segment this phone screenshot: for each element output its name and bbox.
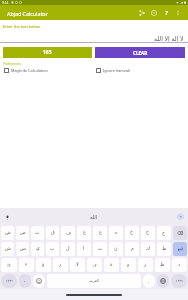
- button[interactable]: لا: [70, 258, 85, 272]
- button[interactable]: م: [125, 242, 139, 256]
- staticText: الله: [90, 214, 98, 220]
- button[interactable]: Share: [136, 7, 148, 19]
- staticText: لا: [76, 262, 79, 268]
- button[interactable]: ؟١٢٣: [1, 274, 17, 288]
- button[interactable]: Info: [148, 7, 160, 19]
- button[interactable]: ء: [19, 258, 34, 272]
- staticText: ح: [146, 230, 150, 236]
- button[interactable]: ل: [61, 242, 75, 256]
- staticText: .: [148, 278, 150, 285]
- button[interactable]: العربية: [47, 274, 141, 288]
- staticText: ؤ: [42, 262, 45, 268]
- button[interactable]: ش: [1, 242, 14, 256]
- button[interactable]: ه: [109, 226, 123, 240]
- button[interactable]: Voice input: [3, 213, 11, 221]
- staticText: ض: [5, 230, 11, 236]
- button[interactable]: خ: [125, 226, 139, 240]
- button[interactable]: Enter: [173, 242, 187, 256]
- button[interactable]: ح: [141, 226, 155, 240]
- button[interactable]: More options: [172, 7, 184, 19]
- button[interactable]: ب: [46, 242, 59, 256]
- button[interactable]: ك: [141, 242, 155, 256]
- staticText: CLEAR: [133, 50, 148, 56]
- button[interactable]: ط: [157, 242, 171, 256]
- staticText: خ: [130, 230, 134, 236]
- staticText: 165: [43, 49, 52, 56]
- staticText: ق: [51, 230, 55, 236]
- staticText: ا: [83, 246, 85, 252]
- staticText: س: [20, 246, 26, 252]
- staticText: ئ: [7, 262, 11, 268]
- staticText: ج: [162, 230, 166, 236]
- staticText: ء: [25, 262, 28, 268]
- staticText: ،: [24, 278, 26, 284]
- button[interactable]: ؤ: [36, 258, 51, 272]
- staticText: ك: [146, 246, 150, 252]
- button[interactable]: 165: [3, 47, 92, 58]
- staticText: لا إله إلا الله: [154, 34, 184, 42]
- staticText: ش: [5, 246, 11, 252]
- button[interactable]: ى: [87, 258, 102, 272]
- staticText: ط: [162, 246, 167, 252]
- button[interactable]: Help: [160, 7, 172, 19]
- button[interactable]: ر: [53, 258, 68, 272]
- button[interactable]: ث: [31, 226, 44, 240]
- staticText: م: [131, 246, 134, 252]
- staticText: ب: [50, 246, 55, 252]
- button[interactable]: ص: [16, 226, 29, 240]
- button[interactable]: و: [121, 258, 136, 272]
- staticText: Enter the text below: [3, 24, 40, 29]
- staticText: ة: [110, 262, 113, 268]
- staticText: ز: [144, 262, 147, 268]
- button[interactable]: ؟١٢٣: [171, 274, 187, 288]
- staticText: ?: [165, 9, 168, 17]
- button[interactable]: ت: [93, 242, 107, 256]
- button[interactable]: ق: [46, 226, 59, 240]
- button[interactable]: ،: [19, 274, 31, 288]
- button[interactable]: ن: [109, 242, 123, 256]
- staticText: Ignore hamzah: [103, 68, 131, 73]
- button[interactable]: ض: [1, 226, 14, 240]
- button[interactable]: CLEAR: [95, 47, 185, 58]
- button[interactable]: Expand suggestions: [177, 213, 184, 220]
- button[interactable]: Maghribi Calculation: [4, 68, 94, 73]
- staticText: ف: [66, 230, 71, 236]
- staticText: ل: [66, 246, 70, 252]
- button[interactable]: ع: [93, 226, 107, 240]
- button[interactable]: د: [172, 258, 187, 272]
- button[interactable]: .: [143, 274, 155, 288]
- staticText: ي: [36, 246, 40, 252]
- button[interactable]: ظ: [155, 258, 170, 272]
- button[interactable]: Ignore hamzah: [96, 68, 188, 73]
- staticText: 9:14: [2, 1, 9, 5]
- button[interactable]: ز: [138, 258, 153, 272]
- button[interactable]: ا: [77, 242, 91, 256]
- staticText: ن: [114, 246, 118, 252]
- staticText: Preferences: [3, 62, 21, 66]
- staticText: Maghribi Calculation: [11, 68, 48, 73]
- staticText: العربية: [89, 279, 99, 283]
- button[interactable]: س: [16, 242, 29, 256]
- button[interactable]: ج: [157, 226, 171, 240]
- button[interactable]: ة: [104, 258, 119, 272]
- button[interactable]: ف: [61, 226, 75, 240]
- button[interactable]: Emoji: [33, 274, 45, 288]
- staticText: ر: [59, 262, 62, 268]
- staticText: ث: [35, 230, 40, 236]
- staticText: ت: [98, 246, 103, 252]
- staticText: د: [178, 262, 181, 268]
- staticText: ع: [99, 230, 102, 236]
- button[interactable]: غ: [77, 226, 91, 240]
- button[interactable]: Backspace: [173, 226, 187, 240]
- button[interactable]: ئ: [1, 258, 17, 272]
- staticText: ص: [20, 230, 26, 236]
- button[interactable]: ي: [31, 242, 44, 256]
- staticText: ظ: [160, 262, 165, 268]
- staticText: ؟١٢٣: [6, 279, 13, 283]
- staticText: ى: [93, 262, 97, 268]
- staticText: ه: [115, 230, 118, 236]
- button[interactable]: Change language: [157, 274, 169, 288]
- staticText: ؟١٢٣: [176, 279, 183, 283]
- staticText: و: [127, 262, 130, 268]
- staticText: غ: [83, 230, 86, 236]
